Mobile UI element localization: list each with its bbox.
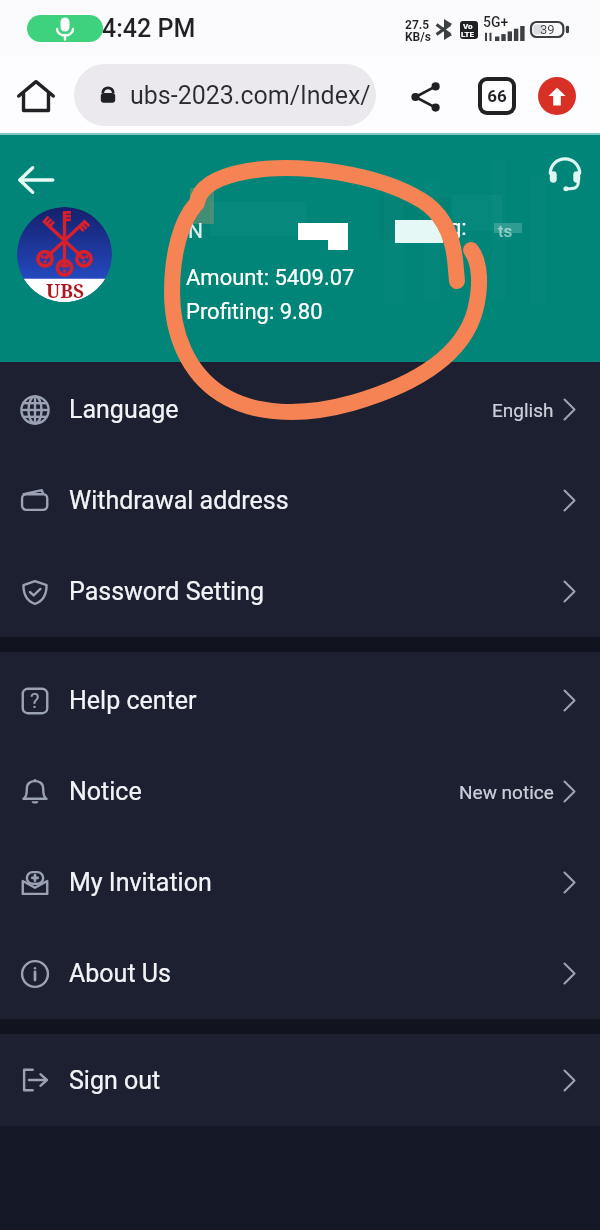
staticText: 27.5 [405, 18, 430, 32]
staticText: New notice [459, 781, 554, 803]
staticText: LTE [461, 30, 474, 39]
staticText: English [492, 399, 554, 421]
staticText: Profiting: 9.80 [186, 299, 323, 325]
staticText: 39 [540, 22, 555, 37]
button[interactable]: Back [8, 152, 64, 208]
staticText: KB/s [405, 30, 431, 44]
button[interactable]: Tabs [478, 77, 516, 115]
staticText: N [188, 219, 203, 244]
staticText: Password Setting [69, 577, 265, 606]
button[interactable]: Withdrawal address [0, 455, 600, 546]
staticText: ? [30, 689, 40, 712]
button[interactable]: Profile [17, 207, 112, 302]
button[interactable]: Sign out [0, 1034, 600, 1126]
staticText: 66 [487, 86, 507, 106]
button[interactable]: Notice [0, 746, 600, 837]
staticText: Vo [463, 22, 473, 31]
button[interactable]: ubs-2023.com/Index/ [74, 64, 376, 126]
button[interactable]: Language [0, 364, 600, 455]
button[interactable]: Home [12, 73, 60, 121]
button[interactable]: Upload [538, 77, 576, 115]
staticText: UBS [46, 278, 84, 302]
staticText: Notice [69, 777, 142, 806]
staticText: 4:42 PM [102, 14, 196, 43]
staticText: ts [498, 221, 513, 241]
button[interactable]: Customer service [542, 152, 588, 198]
staticText: 5G+ [483, 14, 509, 30]
staticText: Amount: 5409.07 [186, 265, 355, 291]
staticText: Help center [69, 686, 197, 715]
button[interactable]: Share [402, 73, 450, 121]
staticText: g: [449, 215, 467, 241]
staticText: Withdrawal address [69, 486, 289, 515]
button[interactable]: About Us [0, 928, 600, 1019]
staticText: ubs-2023.com/Index/ [130, 81, 371, 110]
staticText: Language [69, 395, 179, 424]
staticText: Sign out [69, 1066, 161, 1095]
button[interactable]: My Invitation [0, 837, 600, 928]
button[interactable]: ? [0, 655, 600, 746]
staticText: My Invitation [69, 868, 212, 897]
button[interactable]: Password Setting [0, 546, 600, 637]
staticText: About Us [69, 959, 171, 988]
